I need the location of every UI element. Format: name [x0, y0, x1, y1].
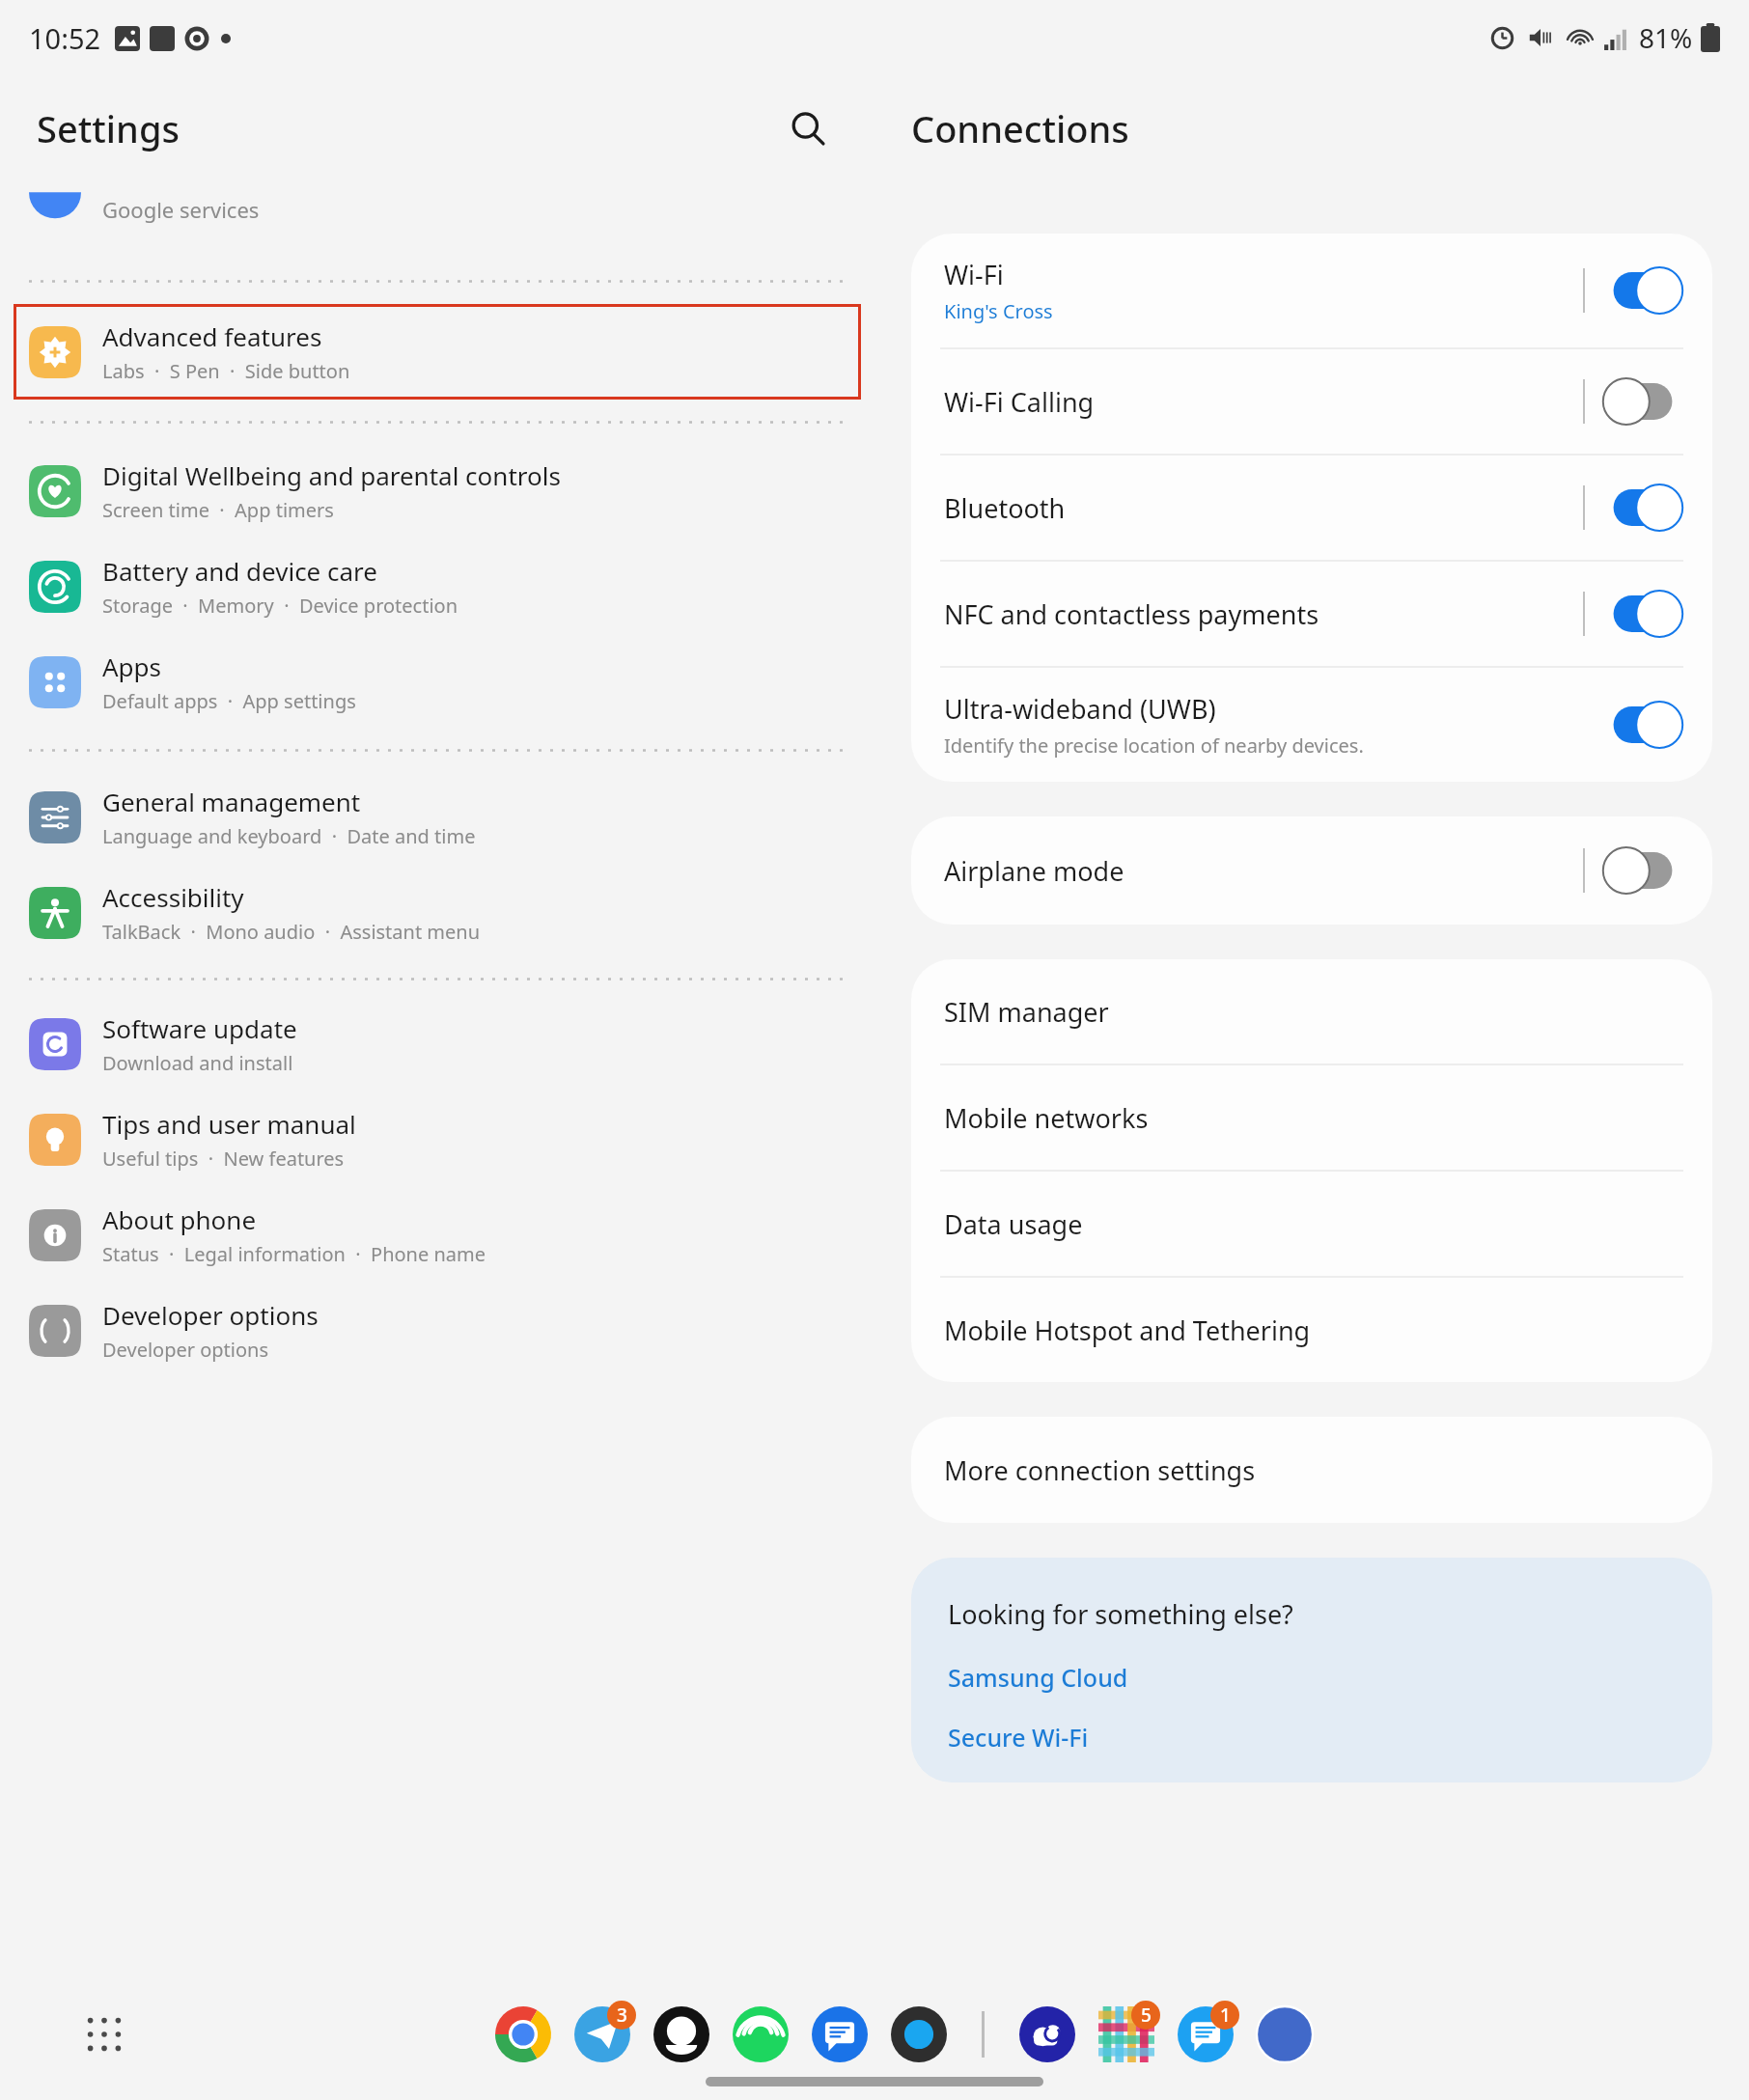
button[interactable]: Secure Wi-Fi: [948, 1721, 1089, 1754]
staticText: NFC and contactless payments: [944, 596, 1319, 632]
button[interactable]: App: [489, 2001, 557, 2068]
button[interactable]: NFC and contactless payments: [911, 562, 1712, 666]
button[interactable]: Wi-Fi Calling: [911, 349, 1712, 454]
button[interactable]: Airplane mode: [911, 816, 1712, 925]
staticText: Wi-Fi Calling: [944, 384, 1095, 420]
button[interactable]: SIM manager: [911, 959, 1712, 1064]
button[interactable]: Toggle on: [1606, 701, 1680, 749]
staticText: King's Cross: [944, 298, 1053, 324]
button[interactable]: Toggle on: [1606, 484, 1680, 532]
button[interactable]: Digital Wellbeing and parental controls: [0, 443, 874, 539]
staticText: Storage · Memory · Device protection: [102, 593, 458, 619]
staticText: 5: [1141, 2003, 1152, 2028]
staticText: Battery and device care: [102, 554, 377, 588]
staticText: General management: [102, 785, 361, 818]
staticText: Airplane mode: [944, 853, 1124, 889]
staticText: Google services: [102, 195, 260, 224]
button[interactable]: Developer options: [0, 1283, 874, 1378]
button[interactable]: Tips and user manual: [0, 1091, 874, 1187]
staticText: Accessibility: [102, 880, 244, 914]
staticText: Settings: [37, 103, 180, 153]
button[interactable]: Toggle on: [1606, 590, 1680, 638]
staticText: Advanced features: [102, 319, 322, 353]
staticText: Developer options: [102, 1337, 269, 1363]
button[interactable]: App: [569, 2001, 636, 2068]
staticText: Tips and user manual: [102, 1107, 356, 1141]
button[interactable]: Data usage: [911, 1172, 1712, 1276]
button[interactable]: App: [885, 2001, 953, 2068]
staticText: TalkBack · Mono audio · Assistant menu: [102, 919, 481, 945]
staticText: Digital Wellbeing and parental controls: [102, 458, 561, 492]
staticText: Useful tips · New features: [102, 1146, 345, 1172]
button[interactable]: Mobile Hotspot and Tethering: [911, 1278, 1712, 1382]
button[interactable]: Wi-Fi: [911, 234, 1712, 347]
button[interactable]: Bluetooth: [911, 456, 1712, 560]
button[interactable]: Samsung Cloud: [948, 1661, 1128, 1694]
button[interactable]: Apps: [0, 634, 874, 730]
button[interactable]: Toggle on: [1606, 266, 1680, 315]
staticText: 10:52: [29, 19, 101, 57]
button[interactable]: Software update: [0, 996, 874, 1091]
staticText: Bluetooth: [944, 490, 1066, 526]
staticText: More connection settings: [944, 1452, 1256, 1488]
button[interactable]: App: [806, 2001, 874, 2068]
staticText: Apps: [102, 649, 162, 683]
staticText: Mobile networks: [944, 1100, 1149, 1136]
staticText: About phone: [102, 1202, 257, 1236]
button[interactable]: Advanced features: [14, 304, 861, 400]
staticText: Download and install: [102, 1050, 293, 1076]
button[interactable]: App: [1172, 2001, 1239, 2068]
staticText: Looking for something else?: [948, 1596, 1293, 1632]
button[interactable]: All apps: [75, 2005, 133, 2063]
staticText: SIM manager: [944, 994, 1109, 1030]
staticText: 1: [1220, 2003, 1231, 2028]
staticText: Connections: [911, 103, 1129, 153]
button[interactable]: Accessibility: [0, 865, 874, 960]
button[interactable]: App: [1013, 2001, 1081, 2068]
button[interactable]: App: [1093, 2001, 1160, 2068]
button[interactable]: Toggle off: [1606, 377, 1680, 426]
staticText: Screen time · App timers: [102, 497, 334, 523]
button[interactable]: About phone: [0, 1187, 874, 1283]
staticText: Default apps · App settings: [102, 688, 356, 714]
staticText: Mobile Hotspot and Tethering: [944, 1312, 1311, 1348]
button[interactable]: Ultra-wideband (UWB): [911, 668, 1712, 782]
staticText: Language and keyboard · Date and time: [102, 823, 476, 849]
staticText: Labs · S Pen · Side button: [102, 358, 350, 384]
button[interactable]: More connection settings: [911, 1417, 1712, 1523]
staticText: Status · Legal information · Phone name: [102, 1241, 486, 1267]
button[interactable]: Mobile networks: [911, 1065, 1712, 1170]
staticText: Identify the precise location of nearby …: [944, 732, 1364, 759]
staticText: Data usage: [944, 1206, 1083, 1242]
button[interactable]: Toggle off: [1606, 846, 1680, 895]
button[interactable]: App: [648, 2001, 715, 2068]
button[interactable]: Search: [778, 98, 838, 158]
staticText: Wi-Fi: [944, 257, 1004, 292]
button[interactable]: General management: [0, 769, 874, 865]
staticText: Software update: [102, 1011, 297, 1045]
staticText: Developer options: [102, 1298, 319, 1332]
button[interactable]: Battery and device care: [0, 539, 874, 634]
button[interactable]: App: [1251, 2001, 1319, 2068]
button[interactable]: App: [727, 2001, 794, 2068]
staticText: 81%: [1639, 19, 1693, 56]
staticText: Secure Wi-Fi: [948, 1721, 1089, 1754]
staticText: Samsung Cloud: [948, 1661, 1128, 1694]
staticText: 3: [617, 2003, 627, 2028]
staticText: Ultra-wideband (UWB): [944, 691, 1216, 727]
